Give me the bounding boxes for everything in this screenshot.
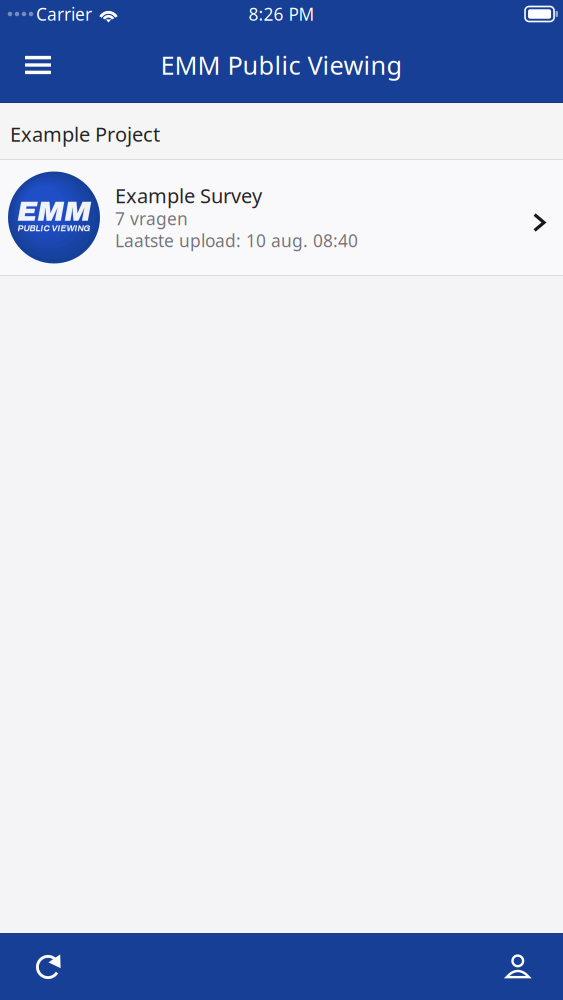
staticText: PUBLIC VIEWING xyxy=(17,224,90,233)
staticText: Carrier xyxy=(36,2,92,25)
staticText: Example Project xyxy=(10,121,160,147)
button[interactable]: EMM xyxy=(0,160,563,275)
staticText: Example Survey xyxy=(115,182,262,209)
button[interactable]: Refresh xyxy=(11,933,79,1000)
staticText: Laatste upload: 10 aug. 08:40 xyxy=(115,229,358,252)
button[interactable]: Account xyxy=(484,933,552,1000)
staticText: 7 vragen xyxy=(115,207,188,230)
staticText: 8:26 PM xyxy=(248,2,314,25)
staticText: EMM Public Viewing xyxy=(160,48,402,82)
staticText: EMM xyxy=(17,196,91,227)
button[interactable]: Menu xyxy=(12,39,64,91)
